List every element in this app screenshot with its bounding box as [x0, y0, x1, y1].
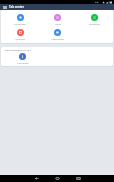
- button[interactable]: Telegram: [76, 14, 113, 25]
- staticText: Youtube: [15, 37, 25, 40]
- button[interactable]: Chat: [39, 14, 76, 25]
- staticText: Recommended for you: [5, 48, 31, 51]
- button[interactable]: Home: [52, 175, 62, 182]
- staticText: Facebook: [17, 61, 29, 64]
- button[interactable]: Messenger: [39, 29, 76, 40]
- staticText: Whatsapp: [14, 22, 26, 25]
- button[interactable]: Facebook: [5, 53, 40, 64]
- button[interactable]: Recent apps: [73, 175, 83, 182]
- button[interactable]: Back: [31, 175, 41, 182]
- button[interactable]: Whatsapp: [1, 14, 39, 25]
- button[interactable]: Open navigation menu: [0, 4, 9, 10]
- staticText: Chat: [55, 22, 61, 25]
- button[interactable]: Youtube: [1, 29, 39, 40]
- staticText: Telegram: [89, 22, 100, 25]
- staticText: Tab center: [9, 5, 25, 9]
- staticText: Messenger: [51, 37, 65, 40]
